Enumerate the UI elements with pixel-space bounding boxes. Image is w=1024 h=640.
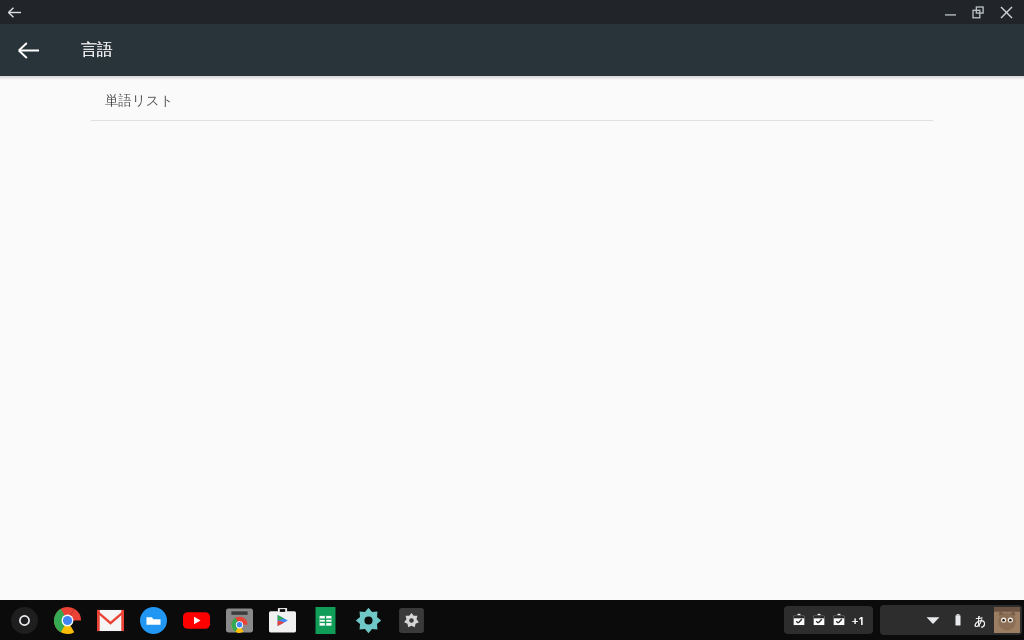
- button[interactable]: Play Store: [261, 600, 304, 640]
- button[interactable]: Open windows: [792, 606, 865, 634]
- button[interactable]: 単語リスト: [91, 80, 933, 120]
- button[interactable]: Sheets: [304, 600, 347, 640]
- button[interactable]: Settings: [347, 600, 390, 640]
- button[interactable]: Minimize: [936, 0, 964, 24]
- button[interactable]: Gmail: [89, 600, 132, 640]
- button[interactable]: Status tray: [880, 605, 1022, 635]
- button[interactable]: Back: [2, 0, 26, 24]
- staticText: +1: [852, 613, 865, 628]
- button[interactable]: YouTube: [175, 600, 218, 640]
- button[interactable]: Close: [992, 0, 1020, 24]
- button[interactable]: Restore window: [964, 0, 992, 24]
- button[interactable]: Android settings: [390, 600, 433, 640]
- button[interactable]: Chrome Web Store: [218, 600, 261, 640]
- staticText: あ: [974, 613, 987, 628]
- button[interactable]: Chrome: [46, 600, 89, 640]
- button[interactable]: Files: [132, 600, 175, 640]
- button[interactable]: App launcher: [3, 600, 46, 640]
- button[interactable]: Navigate up: [6, 28, 50, 72]
- staticText: 単語リスト: [105, 92, 174, 109]
- staticText: 言語: [81, 40, 113, 60]
